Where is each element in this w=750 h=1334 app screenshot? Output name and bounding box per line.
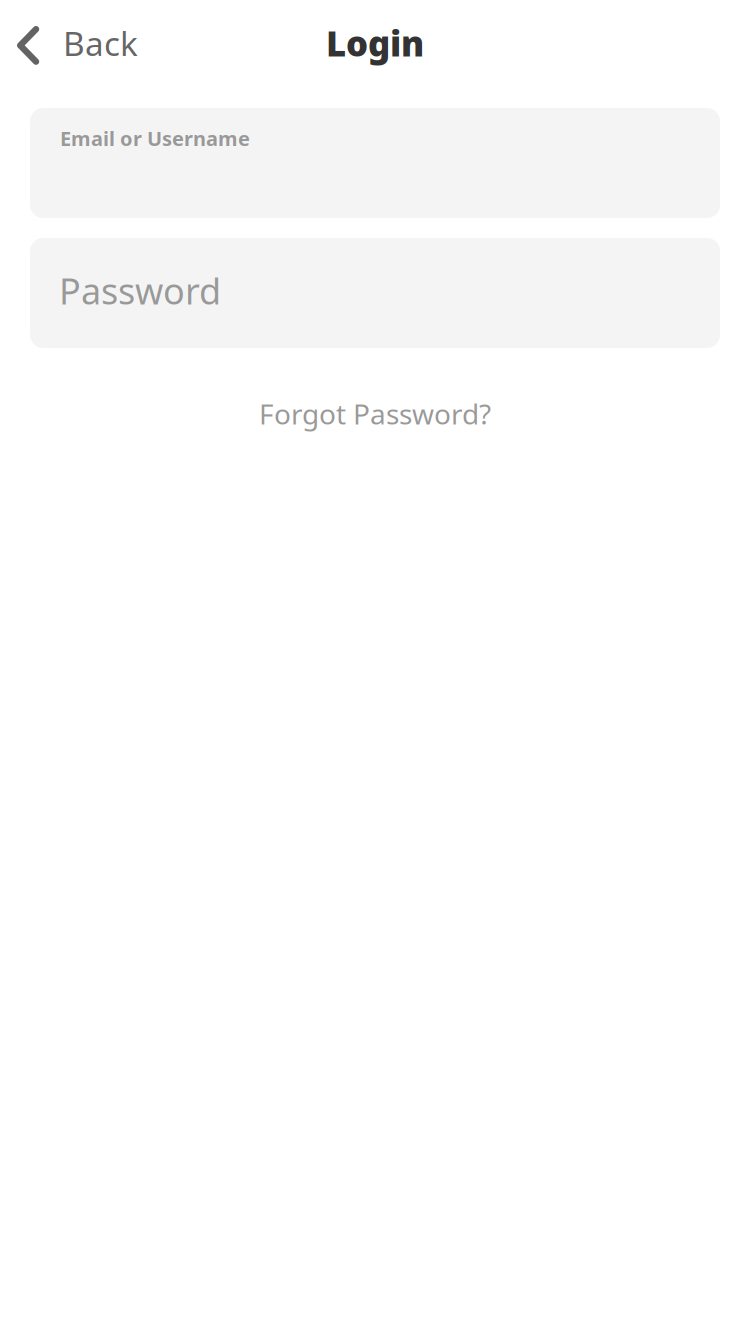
button[interactable]: Email or Username bbox=[30, 108, 720, 218]
staticText: Password bbox=[59, 267, 221, 314]
button[interactable]: Back bbox=[0, 0, 152, 108]
staticText: Forgot Password? bbox=[259, 395, 491, 432]
staticText: Back bbox=[63, 21, 138, 65]
button[interactable]: Password bbox=[30, 238, 720, 348]
button[interactable]: Forgot Password? bbox=[245, 387, 505, 440]
staticText: Login bbox=[326, 20, 424, 66]
staticText: Email or Username bbox=[60, 125, 250, 152]
